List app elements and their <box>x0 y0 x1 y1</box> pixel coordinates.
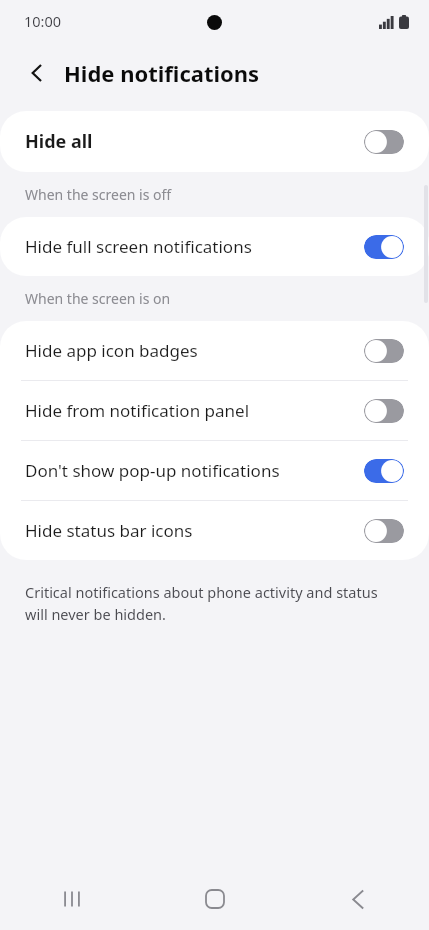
button[interactable]: Hide from notification panel <box>0 381 429 440</box>
button[interactable]: Off <box>364 399 404 423</box>
button[interactable]: Hide full screen notifications <box>0 217 429 276</box>
staticText: Hide from notification panel <box>25 399 250 422</box>
button[interactable]: Off <box>364 130 404 154</box>
staticText: 10:00 <box>24 11 62 31</box>
staticText: Hide notifications <box>64 58 260 88</box>
button[interactable]: Recents <box>0 868 143 930</box>
staticText: Critical notifications about phone activ… <box>25 582 399 624</box>
button[interactable]: Hide status bar icons <box>0 501 429 560</box>
button[interactable]: Hide app icon badges <box>0 321 429 380</box>
button[interactable]: On <box>364 459 404 483</box>
staticText: Hide status bar icons <box>25 519 193 542</box>
staticText: Hide full screen notifications <box>25 235 252 258</box>
staticText: When the screen is off <box>25 185 172 204</box>
button[interactable]: On <box>364 235 404 259</box>
staticText: When the screen is on <box>25 289 171 308</box>
staticText: Don't show pop-up notifications <box>25 459 280 482</box>
staticText: Hide app icon badges <box>25 339 198 362</box>
button[interactable]: Back <box>16 52 58 94</box>
button[interactable]: Back <box>286 868 429 930</box>
button[interactable]: Don't show pop-up notifications <box>0 441 429 500</box>
button[interactable]: Off <box>364 339 404 363</box>
button[interactable]: Home <box>143 868 286 930</box>
button[interactable]: Hide all <box>0 111 429 172</box>
button[interactable]: Off <box>364 519 404 543</box>
staticText: Hide all <box>25 129 93 154</box>
